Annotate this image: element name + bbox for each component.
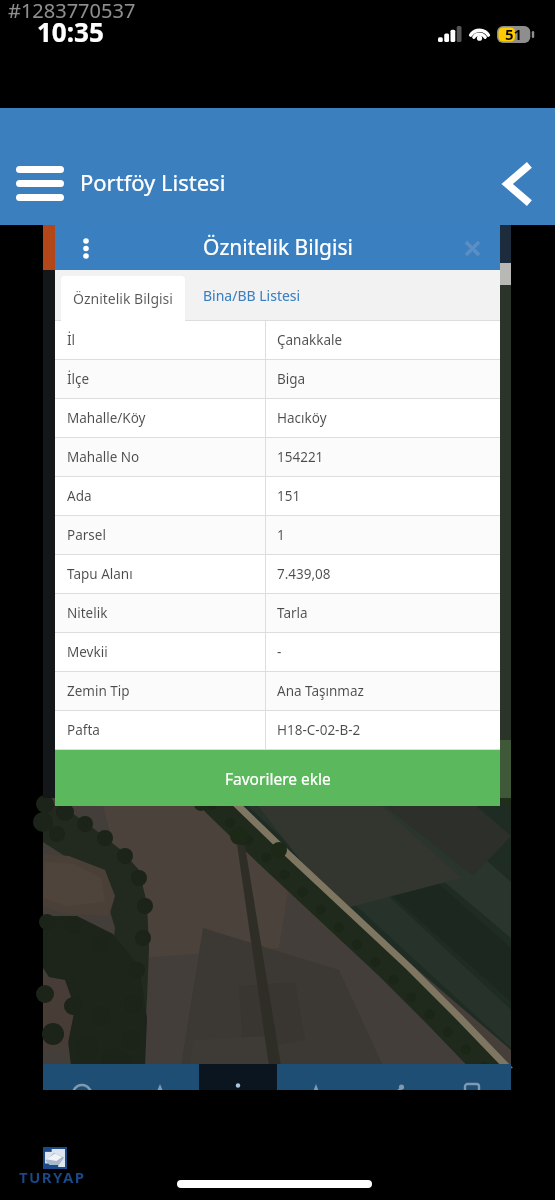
button[interactable]: Refresh — [43, 1064, 121, 1090]
button[interactable]: Documents — [433, 1064, 511, 1090]
staticText: 154221 — [277, 448, 324, 466]
staticText: Ana Taşınmaz — [277, 682, 364, 700]
staticText: Pafta — [67, 721, 100, 739]
staticText: Portföy Listesi — [80, 167, 226, 197]
button[interactable]: İl — [55, 321, 500, 359]
button[interactable]: Favorites — [277, 1064, 355, 1090]
staticText: Ada — [67, 487, 92, 505]
staticText: Hacıköy — [277, 409, 327, 427]
staticText: Bina/BB Listesi — [203, 286, 301, 305]
staticText: Mahalle/Köy — [67, 409, 146, 427]
staticText: 151 — [277, 487, 301, 505]
button[interactable]: Open navigation menu — [8, 159, 72, 207]
button[interactable]: More options — [69, 231, 103, 265]
staticText: İl — [67, 331, 76, 349]
button[interactable]: Back — [490, 153, 546, 215]
staticText: Nitelik — [67, 604, 108, 622]
staticText: Çanakkale — [277, 331, 343, 349]
button[interactable]: Tapu Alanı — [55, 555, 500, 593]
button[interactable]: Measure — [355, 1064, 433, 1090]
button[interactable]: Favorilere ekle — [55, 750, 500, 806]
button[interactable]: Nitelik — [55, 594, 500, 632]
staticText: #1283770537 — [8, 0, 136, 24]
button[interactable]: Bina/BB Listesi — [203, 270, 301, 321]
staticText: Biga — [277, 370, 306, 388]
staticText: TURYAP — [19, 1167, 86, 1187]
button[interactable]: Navigate — [121, 1064, 199, 1090]
staticText: Öznitelik Bilgisi — [73, 289, 173, 308]
staticText: 10:35 — [37, 14, 104, 49]
button[interactable]: İlçe — [55, 360, 500, 398]
staticText: İlçe — [67, 370, 90, 388]
staticText: 7.439,08 — [277, 565, 331, 583]
staticText: Tapu Alanı — [67, 565, 133, 583]
button[interactable]: Parsel — [55, 516, 500, 554]
staticText: Zemin Tip — [67, 682, 130, 700]
button[interactable]: Zemin Tip — [55, 672, 500, 710]
staticText: - — [277, 643, 282, 661]
button[interactable]: Details — [199, 1064, 277, 1090]
staticText: Favorilere ekle — [225, 768, 331, 789]
button[interactable]: Pafta — [55, 711, 500, 749]
button[interactable]: Mahalle No — [55, 438, 500, 476]
staticText: Parsel — [67, 526, 106, 544]
staticText: 51 — [505, 24, 523, 44]
button[interactable]: Ada — [55, 477, 500, 515]
staticText: 1 — [277, 526, 285, 544]
staticText: H18-C-02-B-2 — [277, 721, 361, 739]
staticText: Mevkii — [67, 643, 108, 661]
staticText: Öznitelik Bilgisi — [203, 233, 353, 262]
button[interactable]: Mevkii — [55, 633, 500, 671]
staticText: Tarla — [277, 604, 308, 622]
staticText: Mahalle No — [67, 448, 140, 466]
button[interactable]: Close — [457, 233, 487, 263]
button[interactable]: Öznitelik Bilgisi — [73, 276, 173, 321]
button[interactable]: Mahalle/Köy — [55, 399, 500, 437]
